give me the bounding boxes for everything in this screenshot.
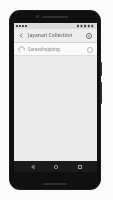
button[interactable]: Recent apps: [74, 161, 85, 172]
button[interactable]: Back: [27, 161, 38, 172]
button[interactable]: Home: [50, 161, 61, 172]
button[interactable]: Options: [85, 45, 94, 54]
button[interactable]: Back: [17, 31, 26, 40]
staticText: Jayanari Collection: [28, 32, 73, 39]
staticText: Sareeshopping: [28, 46, 60, 52]
button[interactable]: Info: [84, 31, 94, 41]
button[interactable]: Sareeshopping: [14, 43, 97, 55]
